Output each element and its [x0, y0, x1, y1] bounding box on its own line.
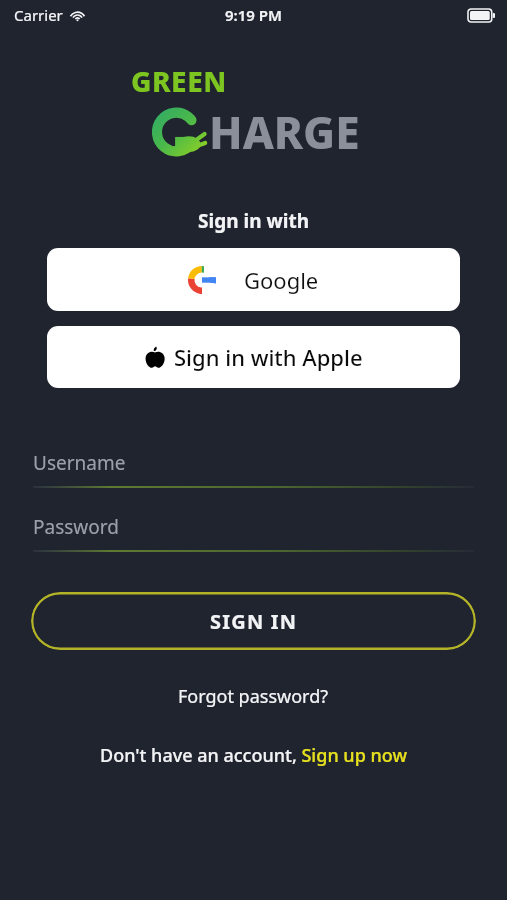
- staticText: Carrier: [14, 5, 63, 25]
- button[interactable]: Sign in with Apple: [47, 326, 460, 388]
- staticText: Password: [33, 514, 119, 540]
- button[interactable]: Google: [47, 248, 460, 311]
- button[interactable]: Forgot password?: [0, 678, 507, 715]
- button[interactable]: SIGN IN: [31, 592, 476, 650]
- staticText: Username: [33, 450, 126, 476]
- staticText: Google: [244, 265, 319, 295]
- staticText: SIGN IN: [210, 608, 298, 635]
- button[interactable]: Password: [33, 514, 474, 552]
- staticText: Sign in with Apple: [174, 342, 363, 372]
- staticText: 9:19 PM: [225, 5, 282, 25]
- staticText: Sign in with: [0, 208, 507, 234]
- button[interactable]: Don't have an account, Sign up now: [0, 737, 507, 774]
- staticText: Forgot password?: [178, 684, 329, 709]
- button[interactable]: Username: [33, 450, 474, 488]
- staticText: HARGE: [209, 102, 360, 162]
- staticText: Don't have an account, Sign up now: [100, 743, 407, 768]
- staticText: GREEN: [131, 62, 227, 100]
